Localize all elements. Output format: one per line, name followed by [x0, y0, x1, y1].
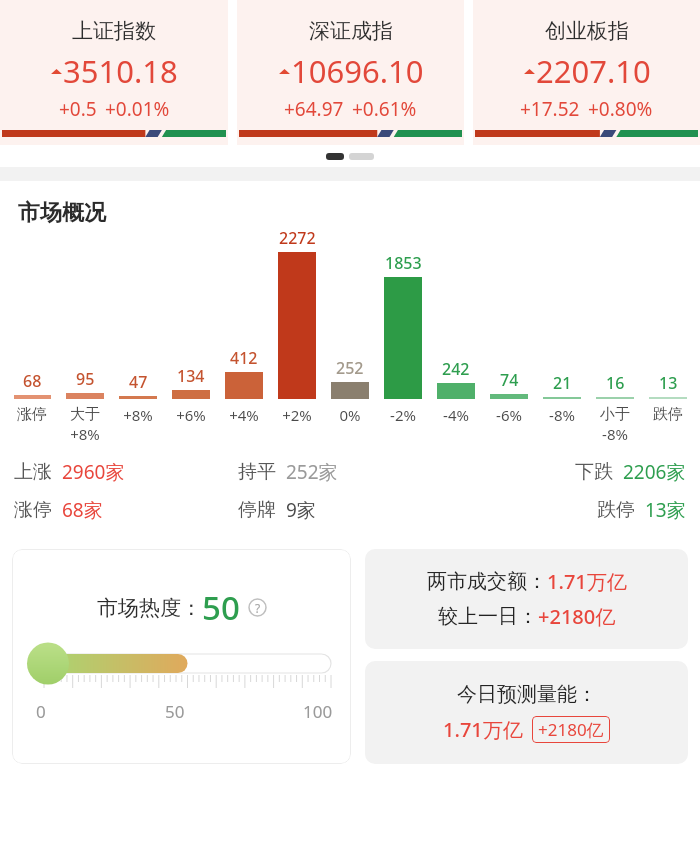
staticText: 21 [553, 372, 572, 394]
staticText: 47 [129, 371, 148, 393]
staticText: 2272 [279, 227, 316, 249]
staticText: 0 [36, 700, 46, 723]
staticText: 50 [165, 700, 185, 723]
staticText: -2% [390, 405, 416, 425]
staticText: 跌停 [597, 498, 635, 522]
staticText: 上证指数 [72, 18, 156, 44]
button[interactable]: 两市成交额： [365, 549, 688, 649]
staticText: +4% [229, 405, 259, 425]
staticText: 9家 [286, 497, 316, 523]
staticText: 134 [177, 365, 205, 387]
staticText: 创业板指 [545, 18, 629, 44]
staticText: 大于 [70, 405, 100, 424]
button[interactable]: 深证成指 [237, 0, 464, 145]
staticText: +0.01% [105, 96, 170, 122]
button[interactable]: 帮助 [248, 598, 267, 617]
staticText: 2206家 [623, 459, 686, 485]
staticText: 1853 [385, 252, 422, 274]
staticText: 242 [442, 358, 470, 380]
staticText: 412 [230, 347, 258, 369]
button[interactable]: 市场热度： [12, 549, 351, 764]
staticText: +6% [176, 405, 206, 425]
staticText: 市场热度： [97, 595, 202, 621]
staticText: 持平 [238, 460, 276, 484]
staticText: 市场概况 [18, 199, 106, 227]
staticText: 涨停 [14, 498, 52, 522]
staticText: -4% [443, 405, 469, 425]
staticText: 13家 [645, 497, 686, 523]
staticText: 95 [76, 368, 95, 390]
staticText: 10696.10 [291, 50, 424, 92]
staticText: 100 [303, 700, 333, 723]
button[interactable]: 今日预测量能： [365, 661, 688, 764]
staticText: 2960家 [62, 459, 125, 485]
staticText: 1.71万亿 [443, 716, 523, 743]
staticText: +64.97 [284, 96, 344, 122]
staticText: 小于 [600, 405, 630, 424]
staticText: +8% [70, 424, 100, 444]
staticText: 跌停 [653, 405, 683, 424]
staticText: 上涨 [14, 460, 52, 484]
staticText: 13 [659, 372, 678, 394]
staticText: -6% [496, 405, 522, 425]
staticText: 74 [500, 369, 519, 391]
staticText: -8% [602, 424, 628, 444]
staticText: 252 [336, 357, 364, 379]
staticText: -8% [549, 405, 575, 425]
staticText: 深证成指 [309, 18, 393, 44]
staticText: 涨停 [17, 405, 47, 424]
button[interactable]: 上证指数 [0, 0, 228, 145]
staticText: +0.61% [352, 96, 417, 122]
staticText: 下跌 [575, 460, 613, 484]
staticText: +17.52 [520, 96, 580, 122]
staticText: 1.71万亿 [547, 568, 627, 595]
staticText: 68家 [62, 497, 103, 523]
staticText: +2180亿 [538, 718, 604, 741]
button[interactable]: 创业板指 [473, 0, 700, 145]
staticText: 今日预测量能： [457, 682, 597, 707]
staticText: +8% [123, 405, 153, 425]
staticText: 50 [202, 585, 240, 630]
staticText: +2% [282, 405, 312, 425]
staticText: 0% [339, 405, 361, 425]
staticText: 16 [606, 372, 625, 394]
staticText: 两市成交额： [427, 569, 547, 594]
staticText: 68 [23, 370, 42, 392]
staticText: +0.80% [588, 96, 653, 122]
staticText: +2180亿 [538, 603, 616, 630]
staticText: 停牌 [238, 498, 276, 522]
staticText: 2207.10 [536, 50, 651, 92]
staticText: 3510.18 [63, 50, 178, 92]
staticText: 252家 [286, 459, 338, 485]
staticText: +0.5 [59, 96, 97, 122]
staticText: 较上一日： [438, 604, 538, 629]
staticText: ? [255, 600, 261, 616]
